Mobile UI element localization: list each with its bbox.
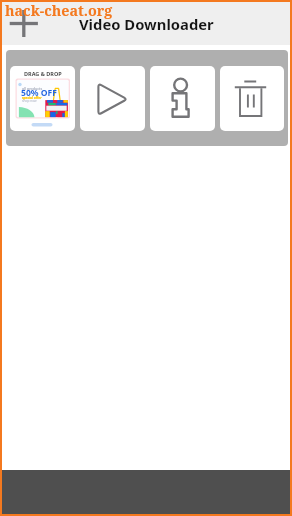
button[interactable]: Bottom bar [0, 470, 292, 516]
staticText: shop now [22, 99, 37, 103]
button[interactable]: Add [0, 0, 46, 45]
button[interactable]: Info [150, 66, 215, 131]
staticText: all products [22, 86, 43, 91]
staticText: 50% OFF [21, 87, 58, 99]
button[interactable]: Delete [220, 66, 284, 131]
staticText: special offer [22, 96, 42, 100]
button[interactable]: Play [80, 66, 145, 131]
staticText: DRAG & DROP [24, 70, 62, 77]
staticText: Video Downloader [79, 14, 214, 34]
staticText: hack-cheat.org [5, 1, 113, 20]
button[interactable]: Video thumbnail [10, 66, 75, 131]
